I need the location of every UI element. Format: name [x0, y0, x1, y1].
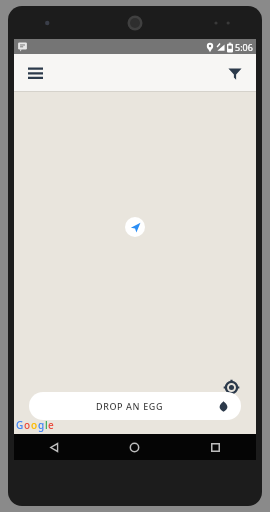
button[interactable]: Your location: [125, 217, 145, 237]
staticText: o: [24, 418, 31, 432]
button[interactable]: Recent apps: [175, 434, 256, 460]
staticText: o: [31, 418, 38, 432]
button[interactable]: Back: [14, 434, 94, 460]
staticText: G: [16, 418, 24, 432]
button[interactable]: Home: [94, 434, 175, 460]
button[interactable]: DROP AN EGG: [29, 392, 241, 420]
button[interactable]: Open navigation menu: [20, 58, 50, 88]
staticText: l: [45, 418, 48, 432]
staticText: 5:06: [235, 41, 253, 53]
button[interactable]: Filter: [220, 58, 250, 88]
staticText: e: [48, 418, 54, 432]
staticText: DROP AN EGG: [41, 400, 218, 412]
staticText: g: [38, 418, 45, 432]
button[interactable]: My location: [218, 374, 244, 400]
